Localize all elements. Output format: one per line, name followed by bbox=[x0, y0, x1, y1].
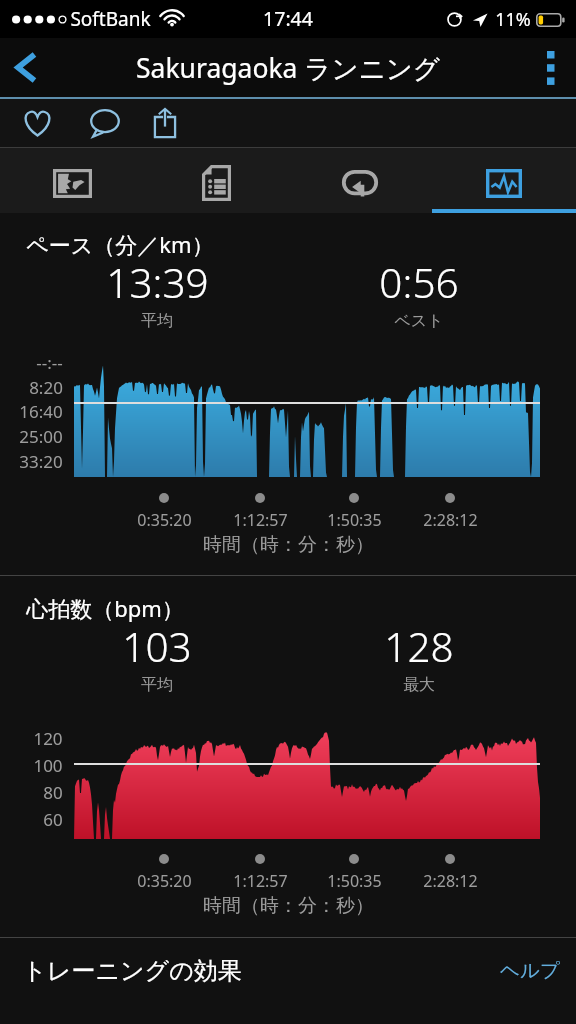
staticText: 103 bbox=[122, 619, 192, 674]
button[interactable]: Comment bbox=[74, 99, 135, 147]
staticText: 25:00 bbox=[19, 425, 63, 448]
staticText: 13:39 bbox=[106, 255, 209, 310]
button[interactable]: Like bbox=[0, 99, 74, 147]
staticText: --:-- bbox=[36, 351, 63, 374]
staticText: 33:20 bbox=[19, 450, 63, 473]
button[interactable]: トレーニングの効果 bbox=[0, 938, 576, 1023]
button[interactable]: Details bbox=[144, 150, 288, 216]
button[interactable]: Back bbox=[0, 38, 52, 97]
staticText: 1:12:57 bbox=[233, 870, 288, 892]
staticText: 17:44 bbox=[263, 5, 313, 32]
staticText: ベスト bbox=[394, 311, 444, 331]
staticText: ヘルプ bbox=[500, 958, 560, 983]
button[interactable]: Laps bbox=[288, 150, 432, 216]
staticText: 1:50:35 bbox=[327, 870, 382, 892]
button[interactable]: Charts bbox=[432, 150, 576, 216]
staticText: 100 bbox=[33, 754, 63, 777]
staticText: 2:28:12 bbox=[423, 870, 478, 892]
staticText: 11% bbox=[495, 7, 531, 32]
staticText: 平均 bbox=[141, 675, 173, 695]
button[interactable]: Map bbox=[0, 150, 144, 216]
staticText: 1:50:35 bbox=[327, 509, 382, 531]
staticText: 120 bbox=[33, 727, 63, 750]
staticText: ペース（分／km） bbox=[26, 229, 214, 259]
staticText: SoftBank bbox=[70, 6, 151, 32]
staticText: 60 bbox=[43, 808, 63, 831]
staticText: 8:20 bbox=[29, 376, 63, 399]
staticText: 16:40 bbox=[19, 400, 63, 423]
staticText: 最大 bbox=[403, 675, 435, 695]
staticText: 時間（時：分：秒） bbox=[203, 894, 374, 918]
staticText: 0:35:20 bbox=[137, 870, 192, 892]
staticText: 時間（時：分：秒） bbox=[203, 533, 374, 557]
staticText: Sakuragaoka ランニング bbox=[136, 50, 440, 86]
staticText: 1:12:57 bbox=[233, 509, 288, 531]
staticText: 128 bbox=[384, 619, 454, 674]
staticText: 平均 bbox=[141, 311, 173, 331]
button[interactable]: More options bbox=[526, 38, 576, 97]
staticText: 80 bbox=[43, 781, 63, 804]
staticText: 2:28:12 bbox=[423, 509, 478, 531]
staticText: トレーニングの効果 bbox=[22, 956, 242, 986]
button[interactable]: Share bbox=[135, 99, 195, 147]
staticText: 心拍数（bpm） bbox=[26, 593, 184, 623]
staticText: 0:35:20 bbox=[137, 509, 192, 531]
staticText: 0:56 bbox=[379, 255, 459, 310]
